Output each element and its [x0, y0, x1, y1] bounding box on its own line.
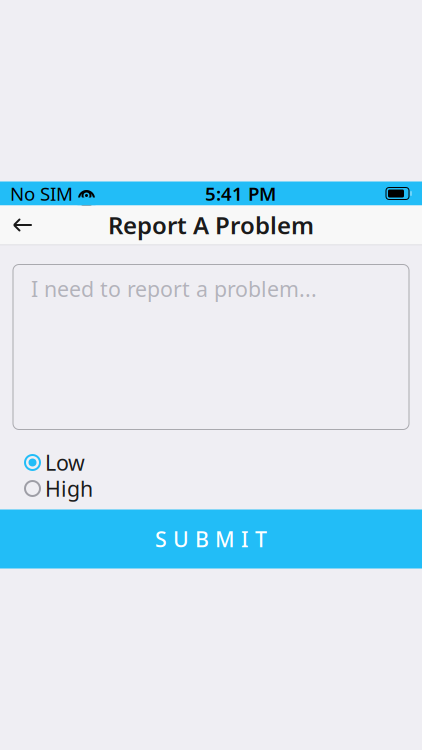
- button[interactable]: Back: [0, 205, 46, 244]
- button[interactable]: S U B M I T: [0, 509, 422, 568]
- staticText: 5:41 PM: [205, 181, 276, 206]
- staticText: I need to report a problem...: [31, 274, 317, 303]
- button[interactable]: I need to report a problem...: [13, 264, 409, 429]
- button[interactable]: Low: [0, 449, 422, 475]
- staticText: Low: [45, 448, 85, 477]
- staticText: High: [45, 474, 93, 503]
- staticText: No SIM: [10, 181, 73, 206]
- staticText: S U B M I T: [155, 525, 267, 553]
- button[interactable]: High: [0, 475, 422, 501]
- staticText: Report A Problem: [108, 209, 314, 241]
